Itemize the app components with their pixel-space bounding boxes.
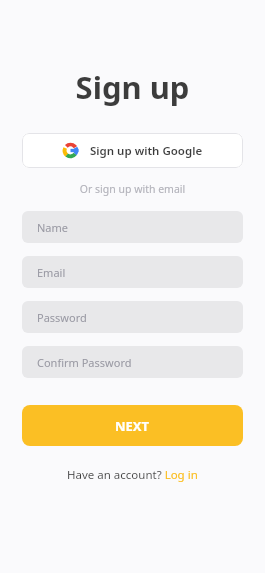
staticText: Email: [37, 265, 66, 280]
button[interactable]: Email: [22, 256, 243, 288]
button[interactable]: Have an account? Log in: [67, 467, 198, 483]
button[interactable]: Password: [22, 301, 243, 333]
staticText: Sign up: [22, 66, 243, 108]
button[interactable]: Sign up with Google: [22, 133, 243, 168]
button[interactable]: Confirm Password: [22, 346, 243, 378]
staticText: Confirm Password: [37, 355, 132, 370]
staticText: Sign up with Google: [90, 143, 203, 159]
button[interactable]: NEXT: [22, 405, 243, 446]
staticText: Have an account? Log in: [67, 467, 198, 483]
button[interactable]: Name: [22, 211, 243, 243]
staticText: Name: [37, 220, 69, 235]
staticText: Or sign up with email: [22, 182, 243, 196]
staticText: NEXT: [115, 417, 150, 435]
staticText: Password: [37, 310, 87, 325]
